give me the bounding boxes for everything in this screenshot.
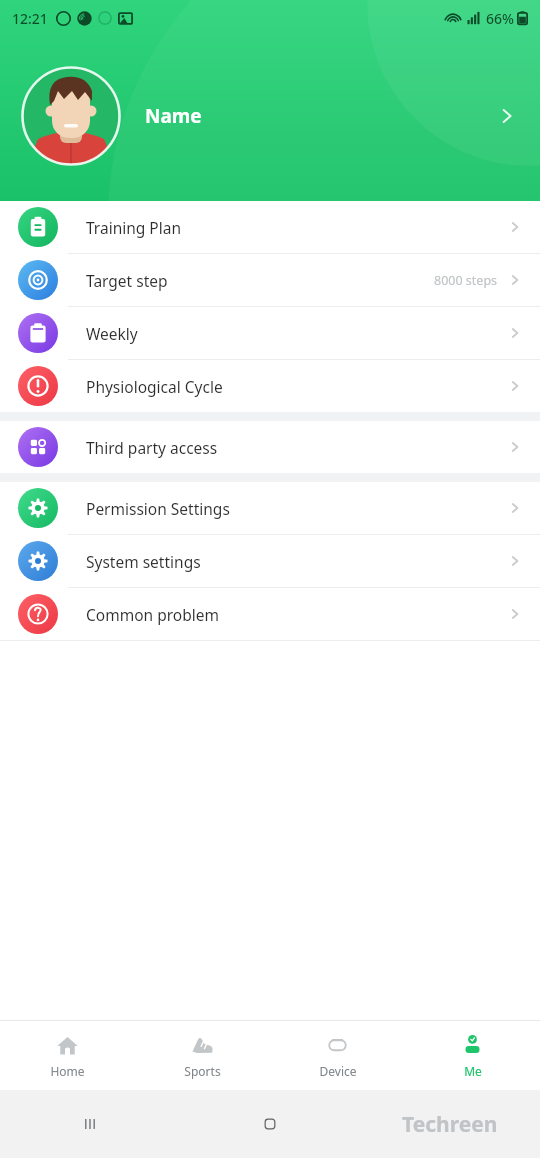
- staticText: Target step: [86, 270, 168, 291]
- button[interactable]: Name: [0, 0, 540, 201]
- button[interactable]: Sports: [135, 1021, 270, 1090]
- button[interactable]: Physiological Cycle: [0, 360, 540, 412]
- staticText: Name: [145, 103, 202, 129]
- staticText: Me: [464, 1063, 482, 1079]
- staticText: Weekly: [86, 323, 138, 344]
- button[interactable]: System settings: [0, 535, 540, 587]
- other: Open profile: [492, 101, 522, 131]
- button[interactable]: Recents: [0, 1090, 180, 1158]
- staticText: Training Plan: [86, 217, 181, 238]
- button[interactable]: Home: [0, 1021, 135, 1090]
- button[interactable]: Device: [270, 1021, 405, 1090]
- button[interactable]: Common problem: [0, 588, 540, 640]
- button[interactable]: Permission Settings: [0, 482, 540, 534]
- button[interactable]: Training Plan: [0, 201, 540, 253]
- staticText: Physiological Cycle: [86, 376, 223, 397]
- staticText: Home: [50, 1063, 85, 1079]
- staticText: 12:21: [12, 9, 48, 28]
- button[interactable]: Home: [180, 1090, 360, 1158]
- staticText: 8000 steps: [434, 272, 498, 289]
- staticText: Sports: [184, 1063, 221, 1079]
- staticText: Techreen: [402, 1110, 498, 1139]
- staticText: System settings: [86, 551, 201, 572]
- button[interactable]: Third party access: [0, 421, 540, 473]
- staticText: 66%: [486, 9, 514, 28]
- staticText: Common problem: [86, 604, 219, 625]
- button[interactable]: Me: [405, 1021, 540, 1090]
- button[interactable]: Weekly: [0, 307, 540, 359]
- staticText: Permission Settings: [86, 498, 230, 519]
- staticText: Third party access: [86, 437, 218, 458]
- staticText: Device: [319, 1063, 357, 1079]
- button[interactable]: Target step: [0, 254, 540, 306]
